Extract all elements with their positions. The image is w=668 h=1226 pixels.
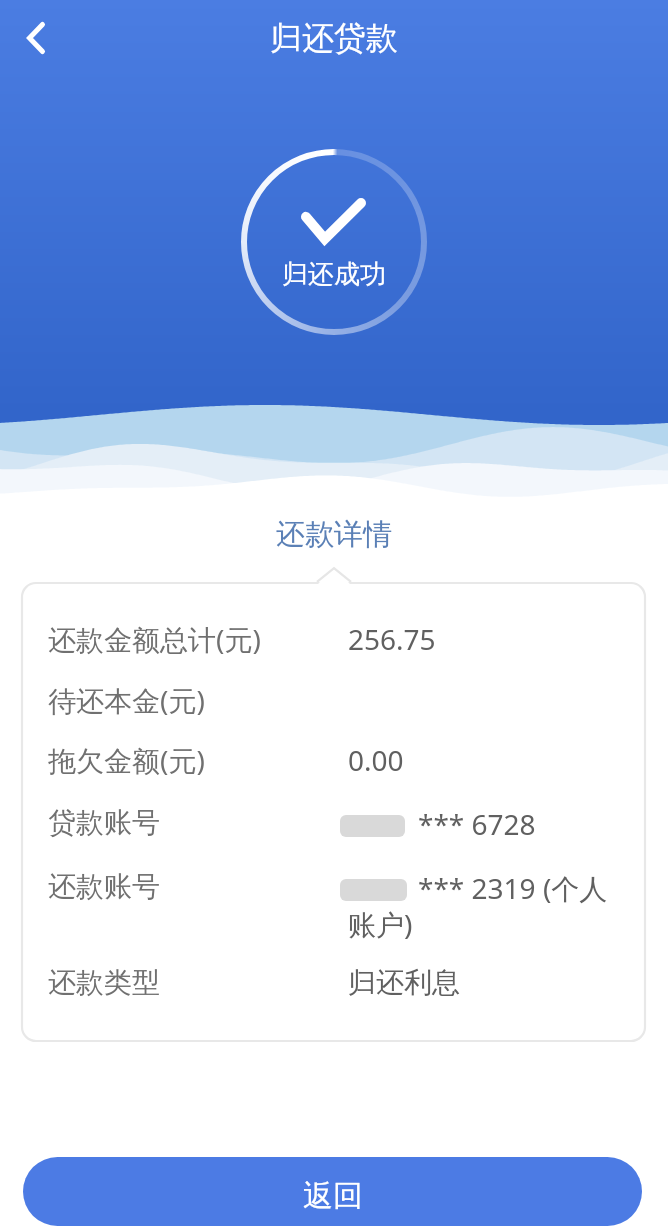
- staticText: 归还贷款: [270, 18, 398, 58]
- staticText: 还款详情: [0, 516, 668, 553]
- staticText: 还款账号: [48, 869, 348, 904]
- staticText: 贷款账号: [48, 805, 348, 840]
- button[interactable]: 返回: [23, 1157, 642, 1226]
- staticText: 待还本金(元): [48, 681, 348, 719]
- staticText: 还款金额总计(元): [48, 620, 348, 658]
- staticText: *** 6728: [348, 805, 536, 843]
- button[interactable]: Back: [6, 8, 66, 68]
- staticText: 0.00: [348, 741, 404, 779]
- staticText: *** 2319 (个人账户): [348, 869, 610, 943]
- staticText: 归还利息: [348, 965, 460, 1000]
- staticText: 归还成功: [282, 258, 386, 291]
- staticText: 还款类型: [48, 965, 348, 1000]
- staticText: 拖欠金额(元): [48, 741, 348, 779]
- staticText: 返回: [303, 1177, 363, 1215]
- staticText: 256.75: [348, 620, 436, 658]
